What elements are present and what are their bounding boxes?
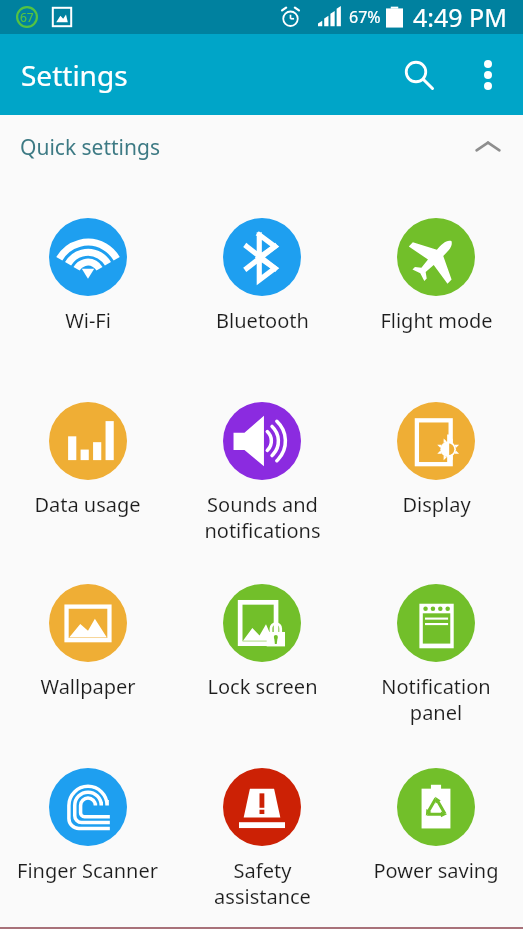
button[interactable]: Quick settings [0, 115, 523, 179]
button[interactable]: Finger Scanner [0, 729, 175, 913]
button[interactable]: Notification panel [349, 545, 523, 729]
staticText: Settings [21, 56, 128, 94]
button[interactable]: Display [349, 363, 523, 545]
button[interactable]: Wi-Fi [0, 179, 175, 363]
staticText: Flight mode [380, 307, 493, 334]
staticText: Power saving [373, 857, 499, 884]
button[interactable]: Lock screen [175, 545, 349, 729]
staticText: Finger Scanner [17, 857, 158, 884]
staticText: 67% [349, 6, 381, 28]
staticText: Bluetooth [216, 307, 309, 334]
button[interactable]: Sounds and notifications [175, 363, 349, 545]
button[interactable]: More options [460, 34, 515, 115]
button[interactable]: Data usage [0, 363, 175, 545]
staticText: Lock screen [207, 673, 318, 700]
staticText: 67 [20, 9, 34, 25]
other: Collapse [475, 134, 501, 160]
staticText: Quick settings [20, 133, 160, 162]
staticText: Display [402, 491, 471, 518]
staticText: Wi-Fi [65, 307, 111, 334]
staticText: Sounds and notifications [204, 491, 321, 544]
staticText: Safety assistance [214, 857, 311, 910]
staticText: Data usage [34, 491, 141, 518]
button[interactable]: Search [378, 34, 460, 115]
button[interactable]: Bluetooth [175, 179, 349, 363]
button[interactable]: Power saving [349, 729, 523, 913]
button[interactable]: Flight mode [349, 179, 523, 363]
staticText: Wallpaper [40, 673, 136, 700]
button[interactable]: Wallpaper [0, 545, 175, 729]
button[interactable]: Safety assistance [175, 729, 349, 913]
staticText: 4:49 PM [413, 0, 507, 34]
staticText: Notification panel [381, 673, 491, 726]
